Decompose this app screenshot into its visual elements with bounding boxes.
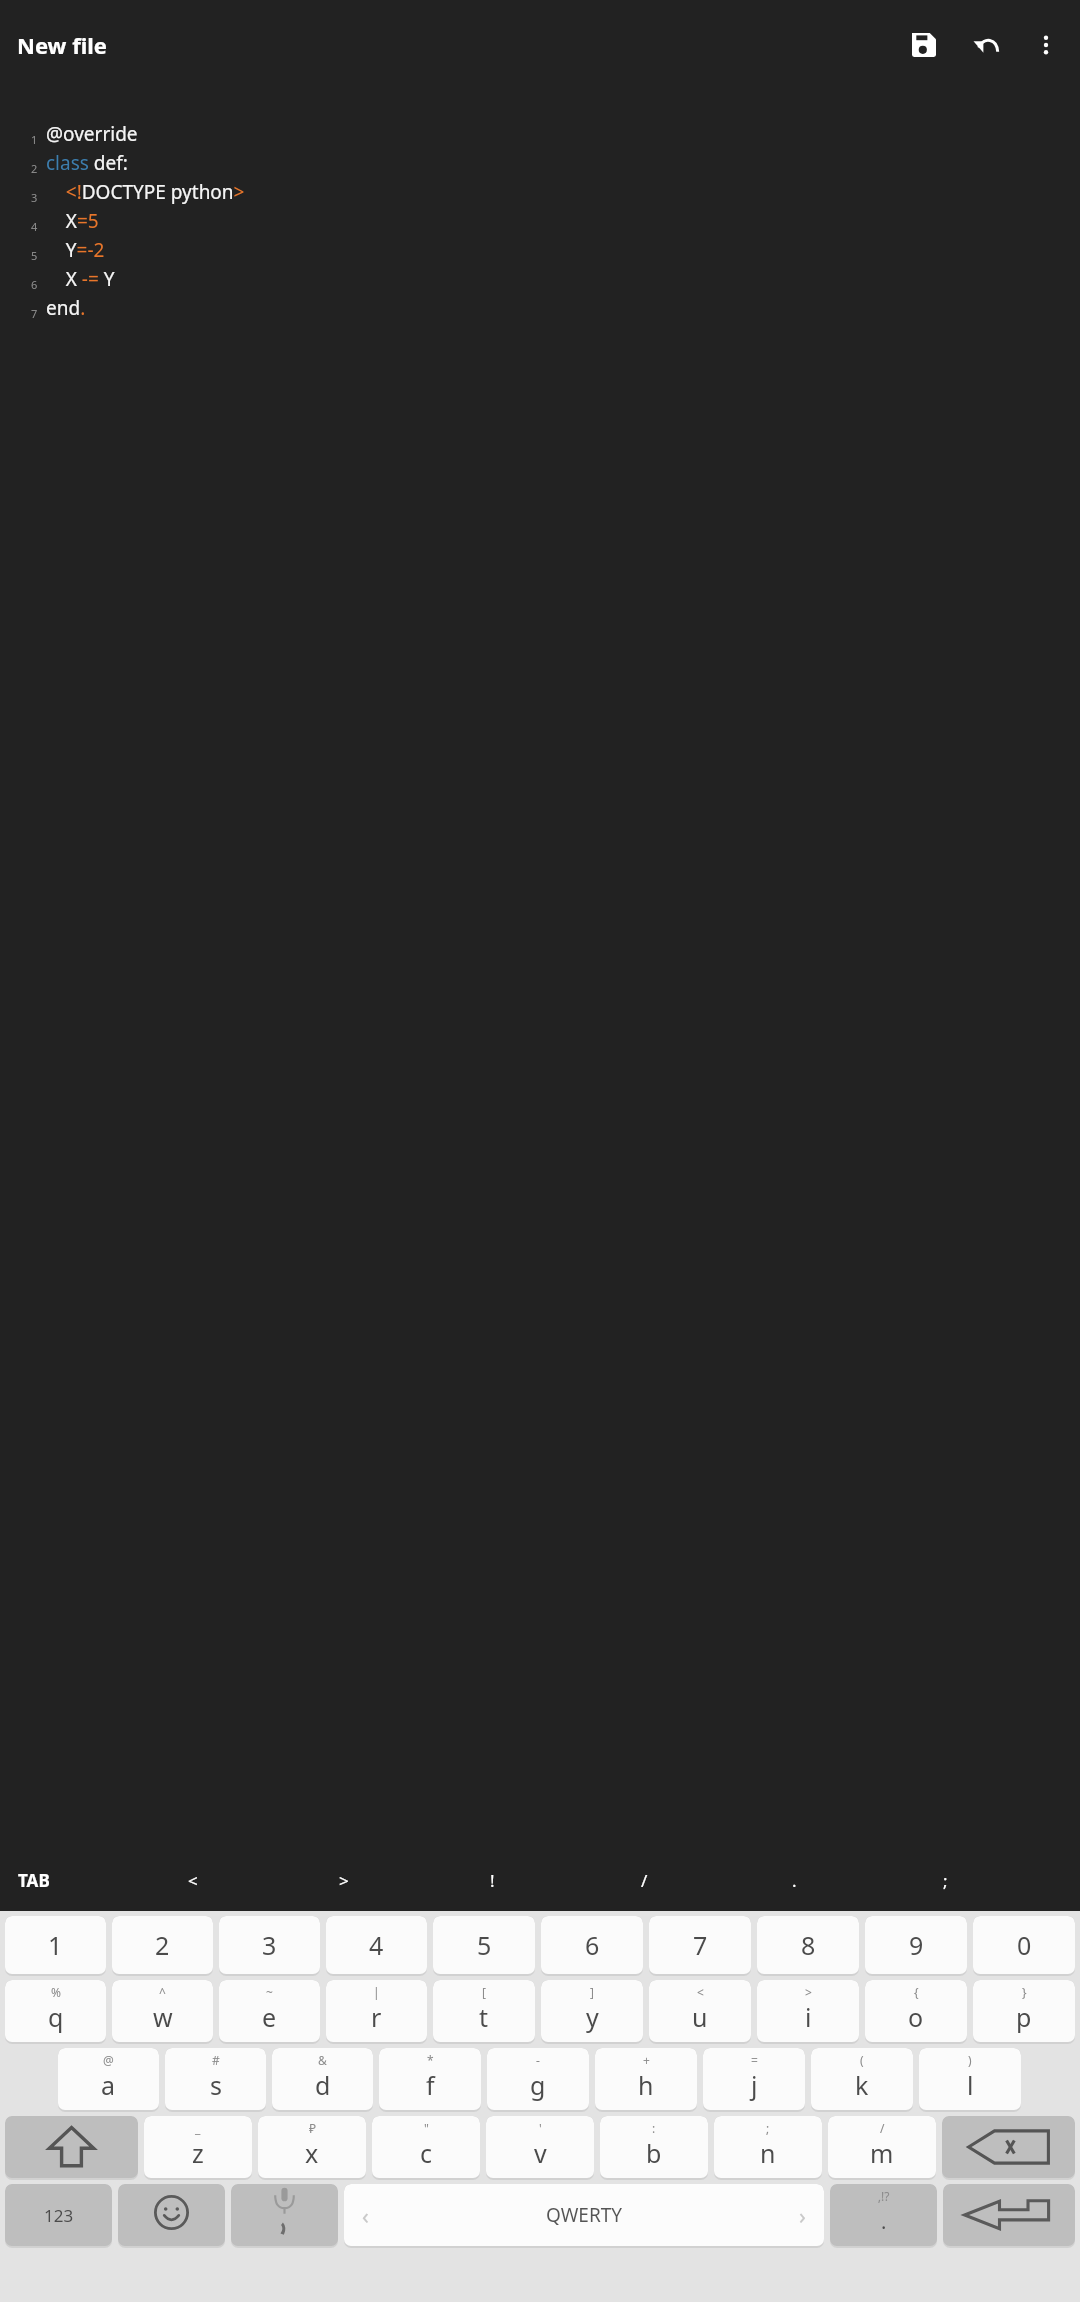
staticText: p	[1016, 2000, 1032, 2034]
button[interactable]: Shift	[5, 2116, 138, 2178]
staticText: {	[914, 1984, 919, 2000]
button[interactable]: }	[973, 1980, 1075, 2042]
button[interactable]: ₽	[258, 2116, 366, 2178]
button[interactable]: Enter	[943, 2184, 1075, 2246]
staticText: b	[646, 2136, 662, 2170]
button[interactable]: @	[58, 2048, 159, 2110]
button[interactable]: 123	[5, 2184, 112, 2246]
button[interactable]: 7	[649, 1916, 751, 1974]
staticText: 0	[1017, 1928, 1032, 1962]
button[interactable]: !	[476, 1849, 627, 1911]
staticText: 1	[48, 1928, 63, 1962]
staticText: @	[103, 2052, 114, 2068]
button[interactable]: ]	[541, 1980, 643, 2042]
button[interactable]: 6	[541, 1916, 643, 1974]
button[interactable]: QWERTY	[344, 2184, 824, 2246]
button[interactable]: =	[703, 2048, 805, 2110]
button[interactable]: Save	[896, 17, 952, 73]
staticText: a	[101, 2068, 116, 2102]
button[interactable]: #	[165, 2048, 266, 2110]
button[interactable]: 3	[219, 1916, 320, 1974]
button[interactable]: {	[865, 1980, 967, 2042]
button[interactable]: :	[600, 2116, 708, 2178]
staticText: j	[751, 2068, 758, 2102]
button[interactable]: +	[595, 2048, 697, 2110]
button[interactable]: <	[174, 1849, 325, 1911]
staticText: %	[51, 1984, 61, 2000]
button[interactable]: >	[325, 1849, 476, 1911]
button[interactable]: (	[811, 2048, 913, 2110]
button[interactable]: 0	[973, 1916, 1075, 1974]
button[interactable]: 5	[433, 1916, 535, 1974]
button[interactable]: Emoji	[118, 2184, 225, 2246]
staticText: 5	[477, 1928, 492, 1962]
staticText: y	[586, 2000, 599, 2034]
button[interactable]: [	[433, 1980, 535, 2042]
button[interactable]: )	[919, 2048, 1021, 2110]
staticText: 8	[801, 1928, 816, 1962]
staticText: _	[195, 2120, 201, 2136]
staticText: c	[420, 2136, 433, 2170]
staticText: <!DOCTYPE python>	[46, 179, 245, 205]
staticText: ‹	[362, 2200, 369, 2230]
button[interactable]: &	[272, 2048, 373, 2110]
button[interactable]: "	[372, 2116, 480, 2178]
staticText: >	[339, 1869, 349, 1892]
button[interactable]: '	[486, 2116, 594, 2178]
button[interactable]: ;	[929, 1849, 1080, 1911]
staticText: 3	[262, 1928, 277, 1962]
staticText: g	[530, 2068, 546, 2102]
button[interactable]: _	[144, 2116, 252, 2178]
button[interactable]: 4	[326, 1916, 427, 1974]
staticText: f	[426, 2068, 435, 2102]
staticText: 4	[369, 1928, 384, 1962]
staticText: Y=-2	[46, 237, 105, 263]
staticText: :	[652, 2120, 656, 2136]
button[interactable]: 2	[112, 1916, 213, 1974]
staticText: s	[210, 2068, 222, 2102]
staticText: /	[641, 1869, 648, 1892]
button[interactable]: Backspace	[942, 2116, 1075, 2178]
button[interactable]: Voice input	[231, 2184, 338, 2246]
button[interactable]: -	[487, 2048, 589, 2110]
button[interactable]: 1	[5, 1916, 106, 1974]
button[interactable]: ;	[714, 2116, 822, 2178]
staticText: .	[881, 2208, 887, 2235]
staticText: e	[262, 2000, 277, 2034]
button[interactable]: /	[627, 1849, 778, 1911]
staticText: n	[760, 2136, 776, 2170]
staticText: k	[855, 2068, 869, 2102]
staticText: New file	[17, 30, 107, 60]
button[interactable]: *	[379, 2048, 481, 2110]
button[interactable]: >	[757, 1980, 859, 2042]
button[interactable]: ^	[112, 1980, 213, 2042]
staticText: -	[536, 2052, 540, 2068]
button[interactable]: /	[828, 2116, 936, 2178]
button[interactable]: ~	[219, 1980, 320, 2042]
staticText: 7	[693, 1928, 708, 1962]
staticText: l	[967, 2068, 974, 2102]
button[interactable]: 8	[757, 1916, 859, 1974]
button[interactable]: 9	[865, 1916, 967, 1974]
staticText: d	[315, 2068, 331, 2102]
staticText: 123	[44, 2204, 74, 2227]
button[interactable]: Undo	[958, 17, 1014, 73]
staticText: r	[371, 2000, 382, 2034]
staticText: ;	[766, 2120, 770, 2136]
staticText: ~	[266, 1984, 273, 2000]
staticText: .	[792, 1869, 797, 1892]
button[interactable]: TAB	[14, 1849, 174, 1911]
button[interactable]: .	[778, 1849, 929, 1911]
staticText: QWERTY	[546, 2202, 623, 2228]
button[interactable]: %	[5, 1980, 106, 2042]
staticText: class def:	[46, 150, 128, 176]
button[interactable]: ‚!?	[830, 2184, 937, 2246]
staticText: &	[318, 2052, 327, 2068]
staticText: 6	[585, 1928, 600, 1962]
staticText: ]	[590, 1984, 594, 2000]
button[interactable]: |	[326, 1980, 427, 2042]
staticText: =	[751, 2052, 758, 2068]
button[interactable]: More options	[1018, 17, 1074, 73]
button[interactable]: <	[649, 1980, 751, 2042]
staticText: |	[373, 1984, 380, 2000]
